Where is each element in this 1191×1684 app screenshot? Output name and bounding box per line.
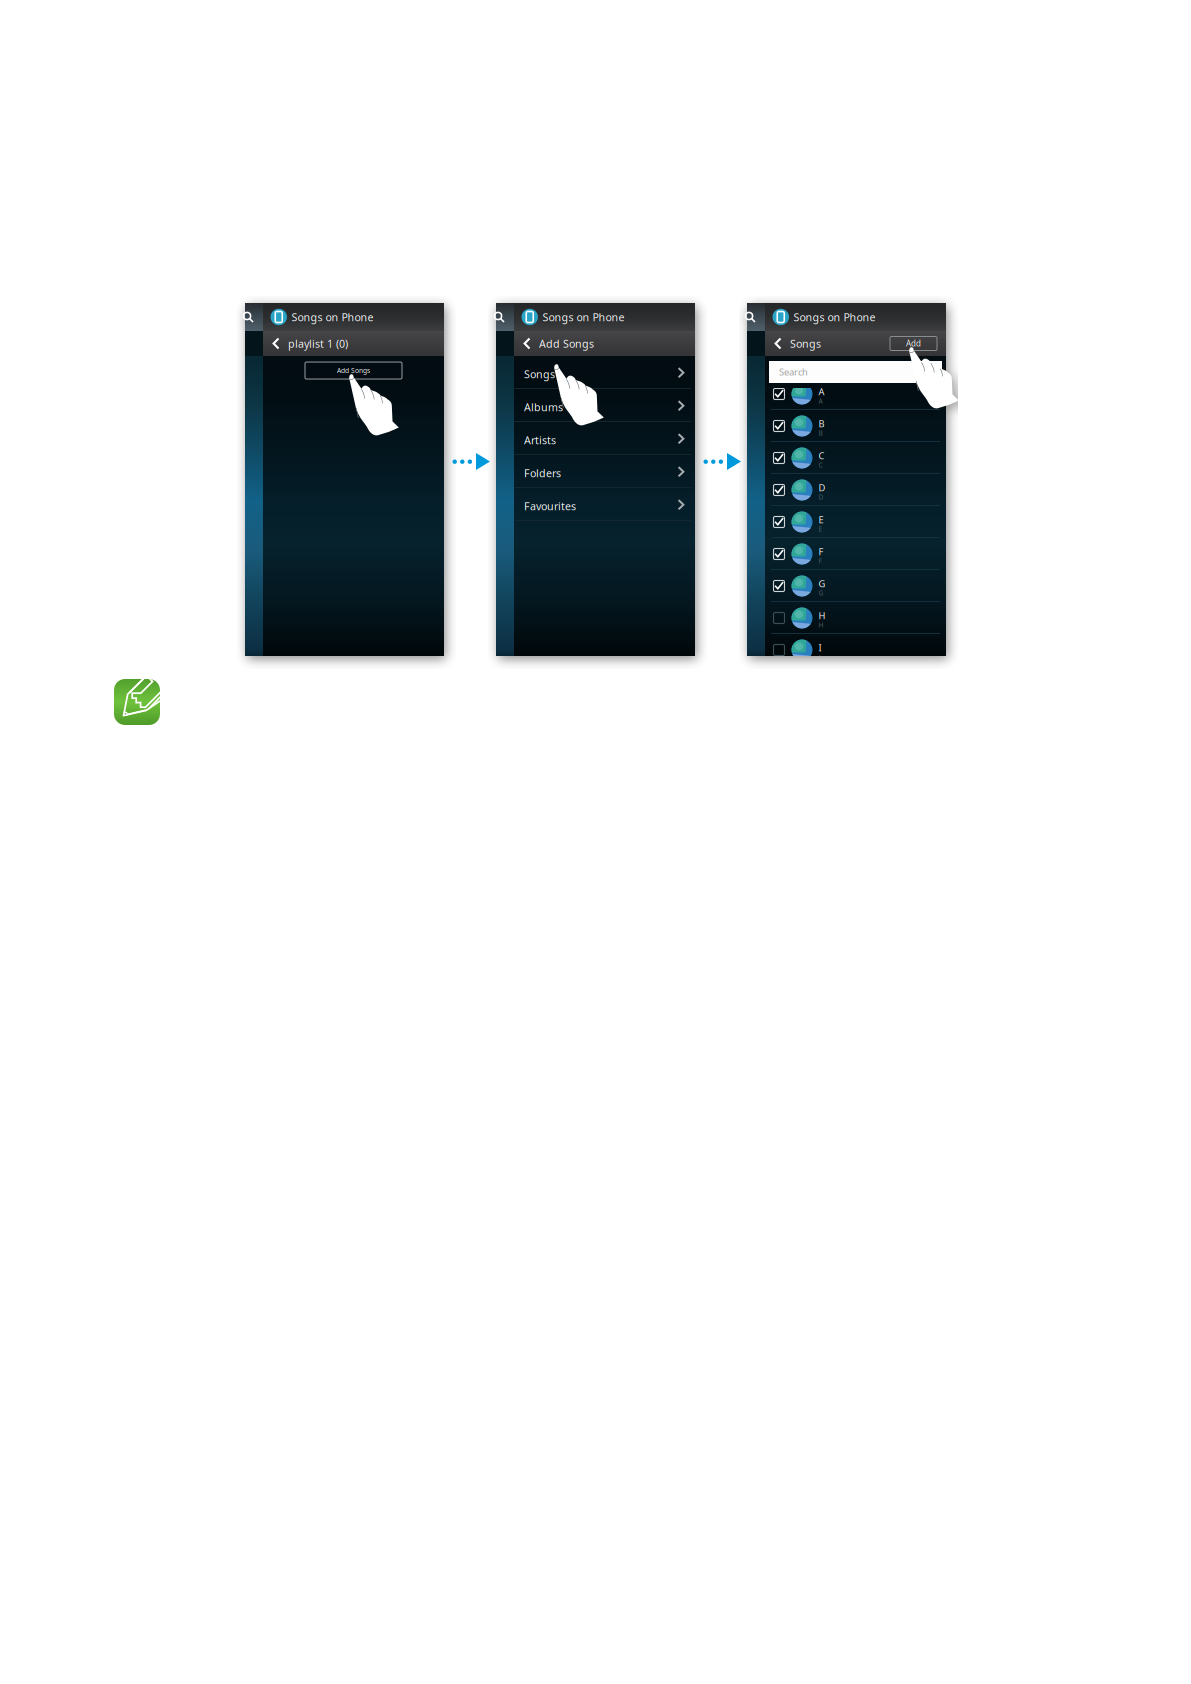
staticText: I — [818, 652, 820, 661]
staticText: A — [818, 396, 822, 405]
staticText: A — [818, 385, 824, 398]
button[interactable]: Albums — [514, 389, 695, 422]
staticText: B — [818, 428, 822, 437]
staticText: C — [818, 449, 824, 462]
staticText: C — [818, 460, 822, 469]
staticText: Songs — [524, 367, 555, 381]
button[interactable]: D — [765, 474, 946, 506]
staticText: Folders — [524, 466, 561, 480]
button[interactable]: H — [765, 602, 946, 634]
button[interactable]: A — [765, 378, 946, 410]
staticText: Add Songs — [337, 366, 370, 375]
staticText: Songs on Phone — [793, 310, 875, 324]
staticText: E — [818, 524, 822, 533]
button[interactable]: Add Songs — [305, 362, 402, 379]
button[interactable]: Add Songs — [496, 331, 600, 356]
button[interactable]: Songs — [747, 331, 827, 356]
button[interactable]: Favourites — [514, 488, 695, 521]
staticText: I — [818, 641, 821, 654]
button[interactable]: B — [765, 410, 946, 442]
staticText: D — [818, 492, 823, 501]
staticText: Search — [779, 366, 808, 378]
button[interactable]: I — [765, 634, 946, 666]
button[interactable]: G — [765, 570, 946, 602]
staticText: Add — [906, 338, 921, 349]
button[interactable]: C — [765, 442, 946, 474]
staticText: E — [818, 513, 823, 526]
staticText: playlist 1 (0) — [288, 336, 348, 351]
staticText: G — [818, 588, 823, 597]
button[interactable]: Search — [769, 361, 942, 383]
staticText: Songs — [790, 336, 821, 351]
button[interactable]: playlist 1 (0) — [245, 331, 354, 356]
staticText: Favourites — [524, 499, 576, 513]
button[interactable]: Folders — [514, 455, 695, 488]
button[interactable]: Artists — [514, 422, 695, 455]
button[interactable]: F — [765, 538, 946, 570]
staticText: Albums — [524, 400, 563, 414]
staticText: F — [818, 556, 821, 565]
button[interactable]: Songs — [514, 356, 695, 389]
button[interactable]: E — [765, 506, 946, 538]
button[interactable]: Add — [890, 336, 937, 350]
staticText: Songs on Phone — [542, 310, 624, 324]
staticText: H — [818, 620, 823, 629]
staticText: Add Songs — [539, 336, 594, 351]
button[interactable]: Note — [114, 679, 160, 725]
staticText: D — [818, 481, 825, 494]
staticText: Artists — [524, 433, 556, 447]
staticText: B — [818, 417, 824, 430]
staticText: Songs on Phone — [291, 310, 373, 324]
staticText: H — [818, 609, 825, 622]
staticText: G — [818, 577, 825, 590]
staticText: F — [818, 545, 823, 558]
